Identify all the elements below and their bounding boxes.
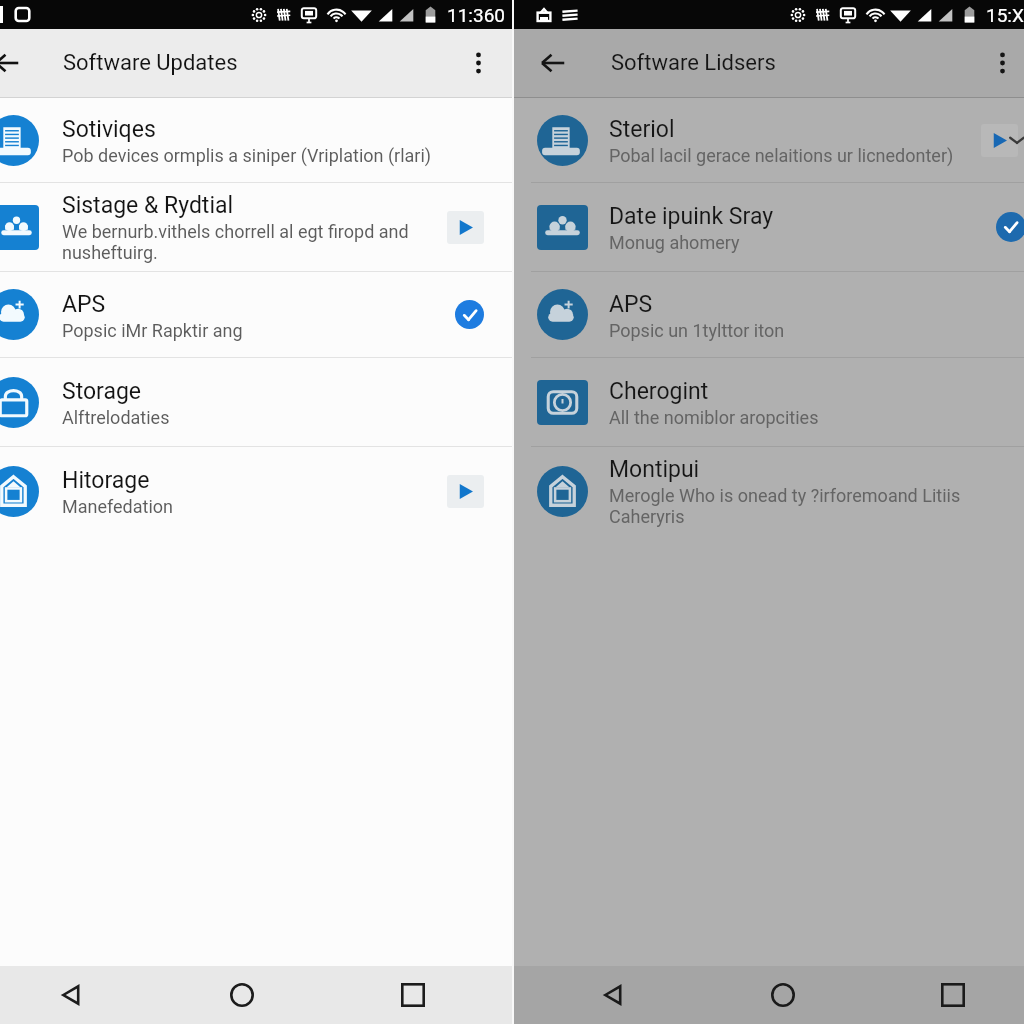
- staticText: Date ipuink Sray: [609, 203, 774, 230]
- staticText: Monug ahomery: [609, 232, 740, 253]
- staticText: Popsic un 1tylttor iton: [609, 320, 785, 341]
- staticText: Manefedation: [62, 496, 173, 517]
- button[interactable]: More options: [444, 29, 512, 97]
- button[interactable]: Installed: [996, 212, 1024, 242]
- button[interactable]: Installed: [455, 300, 484, 329]
- staticText: All the nomiblor aropcities: [609, 407, 819, 428]
- staticText: Alftrelodaties: [62, 407, 170, 428]
- staticText: Cherogint: [609, 378, 709, 405]
- staticText: Sotiviqes: [62, 116, 156, 143]
- button[interactable]: Play: [447, 475, 484, 508]
- button[interactable]: Back: [0, 966, 156, 1024]
- button[interactable]: Cherogint: [514, 358, 1024, 446]
- staticText: Merogle Who is onead ty ?irforemoand Lit…: [609, 485, 961, 528]
- staticText: 15:X: [986, 4, 1024, 26]
- staticText: APS: [609, 291, 653, 318]
- button[interactable]: Steriol: [514, 98, 1024, 182]
- button[interactable]: Sotiviqes: [0, 98, 512, 182]
- button[interactable]: Navigate up: [514, 29, 611, 97]
- button[interactable]: APS: [0, 272, 512, 357]
- button[interactable]: Home: [698, 966, 868, 1024]
- staticText: Software Updates: [63, 50, 238, 76]
- button[interactable]: Back: [528, 966, 698, 1024]
- button[interactable]: Date ipuink Sray: [514, 183, 1024, 271]
- staticText: Montipui: [609, 456, 700, 483]
- staticText: Pobal lacil gerace nelaitions ur licnedo…: [609, 145, 954, 166]
- staticText: Popsic iMr Rapktir ang: [62, 320, 243, 341]
- button[interactable]: Recents: [868, 966, 1024, 1024]
- staticText: APS: [62, 291, 106, 318]
- button[interactable]: Play: [981, 124, 1018, 157]
- button[interactable]: Play: [447, 211, 484, 244]
- staticText: 11:360: [447, 4, 505, 26]
- button[interactable]: Home: [156, 966, 327, 1024]
- button[interactable]: More options: [980, 29, 1024, 97]
- button[interactable]: Navigate up: [0, 29, 63, 97]
- button[interactable]: APS: [514, 272, 1024, 357]
- button[interactable]: Montipui: [514, 447, 1024, 535]
- staticText: Steriol: [609, 116, 675, 143]
- button[interactable]: Sistage & Rydtial: [0, 183, 512, 271]
- staticText: Storage: [62, 378, 142, 405]
- button[interactable]: Hitorage: [0, 447, 512, 535]
- staticText: Pob devices ormplis a siniper (Vriplatio…: [62, 145, 432, 166]
- staticText: Hitorage: [62, 467, 150, 494]
- button[interactable]: Recents: [327, 966, 498, 1024]
- staticText: We bernurb.vithels chorrell al egt firop…: [62, 221, 409, 264]
- button[interactable]: Storage: [0, 358, 512, 446]
- staticText: Sistage & Rydtial: [62, 192, 234, 219]
- staticText: Software Lidsers: [611, 50, 776, 76]
